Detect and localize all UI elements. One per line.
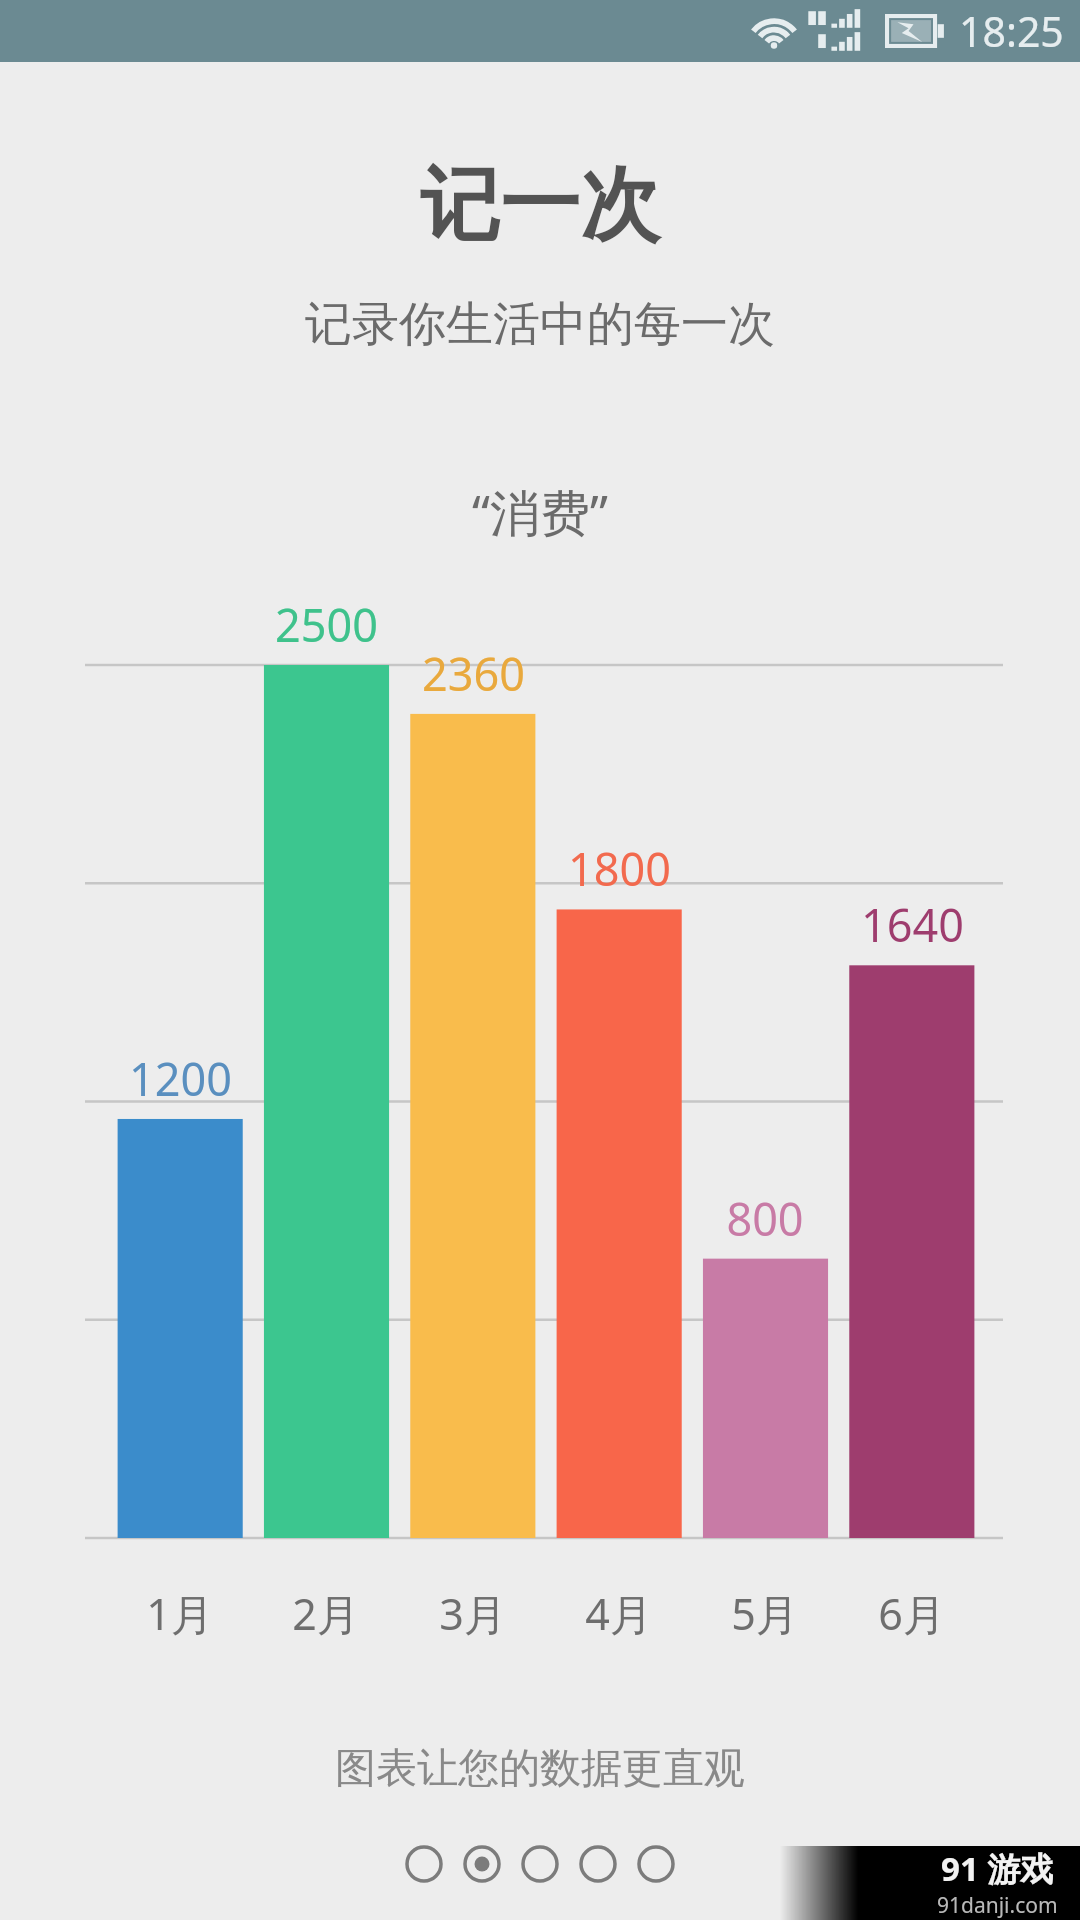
staticText: 记录你生活中的每一次 [0, 295, 1080, 354]
button[interactable]: Page 3 [511, 1835, 569, 1893]
button[interactable]: 1200 [107, 1047, 253, 1109]
staticText: 1月 [146, 1584, 214, 1643]
button[interactable]: Page 2 [453, 1835, 511, 1893]
button[interactable]: Page 4 [569, 1835, 627, 1893]
staticText: 图表让您的数据更直观 [0, 1743, 1080, 1795]
staticText: 5月 [731, 1584, 799, 1643]
staticText: “消费” [0, 478, 1080, 546]
staticText: 2500 [275, 594, 378, 655]
button[interactable]: 1640 [839, 893, 985, 955]
staticText: 2月 [292, 1584, 360, 1643]
staticText: 1800 [568, 838, 671, 899]
staticText: 2360 [422, 643, 525, 704]
button[interactable]: 2360 [400, 642, 546, 704]
button[interactable]: Page 1 [395, 1835, 453, 1893]
button[interactable]: 1800 [546, 837, 692, 899]
staticText: 1200 [129, 1048, 232, 1109]
staticText: 800 [726, 1188, 804, 1249]
button[interactable]: 2500 [253, 593, 399, 655]
staticText: 1640 [861, 894, 964, 955]
staticText: 4月 [585, 1584, 653, 1643]
button[interactable]: Page 5 [627, 1835, 685, 1893]
staticText: 3月 [439, 1584, 507, 1643]
staticText: 6月 [878, 1584, 946, 1643]
staticText: 记一次 [0, 155, 1080, 256]
staticText: 18:25 [959, 3, 1064, 59]
staticText: 91danji.com [937, 1891, 1058, 1920]
button[interactable]: 800 [692, 1187, 838, 1249]
staticText: 91 游戏 [941, 1846, 1054, 1891]
